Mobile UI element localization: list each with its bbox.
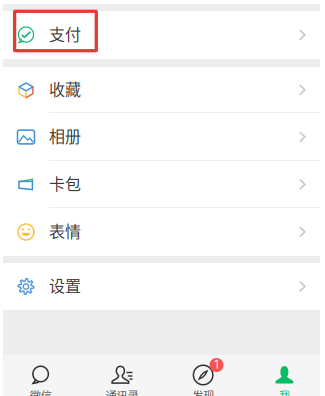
button[interactable]: 微信 bbox=[0, 354, 81, 396]
button[interactable]: 通讯录 bbox=[81, 354, 162, 396]
button[interactable]: 发现 bbox=[162, 354, 244, 396]
staticText: 发现 bbox=[192, 387, 214, 396]
staticText: 微信 bbox=[30, 387, 52, 396]
staticText: 表情 bbox=[49, 219, 81, 242]
button[interactable]: 支付 bbox=[0, 11, 325, 59]
staticText: 我 bbox=[279, 387, 290, 396]
staticText: 收藏 bbox=[49, 77, 81, 100]
button[interactable]: 收藏 bbox=[0, 67, 325, 113]
staticText: 支付 bbox=[49, 22, 81, 45]
button[interactable]: 表情 bbox=[0, 208, 325, 256]
button[interactable]: 我 bbox=[244, 354, 325, 396]
staticText: 相册 bbox=[49, 124, 81, 147]
staticText: 设置 bbox=[49, 273, 81, 297]
button[interactable]: 相册 bbox=[0, 113, 325, 161]
button[interactable]: 设置 bbox=[0, 263, 325, 310]
button[interactable]: 卡包 bbox=[0, 161, 325, 208]
staticText: 通讯录 bbox=[105, 387, 138, 396]
staticText: 卡包 bbox=[49, 171, 81, 195]
staticText: 1 bbox=[214, 357, 219, 372]
